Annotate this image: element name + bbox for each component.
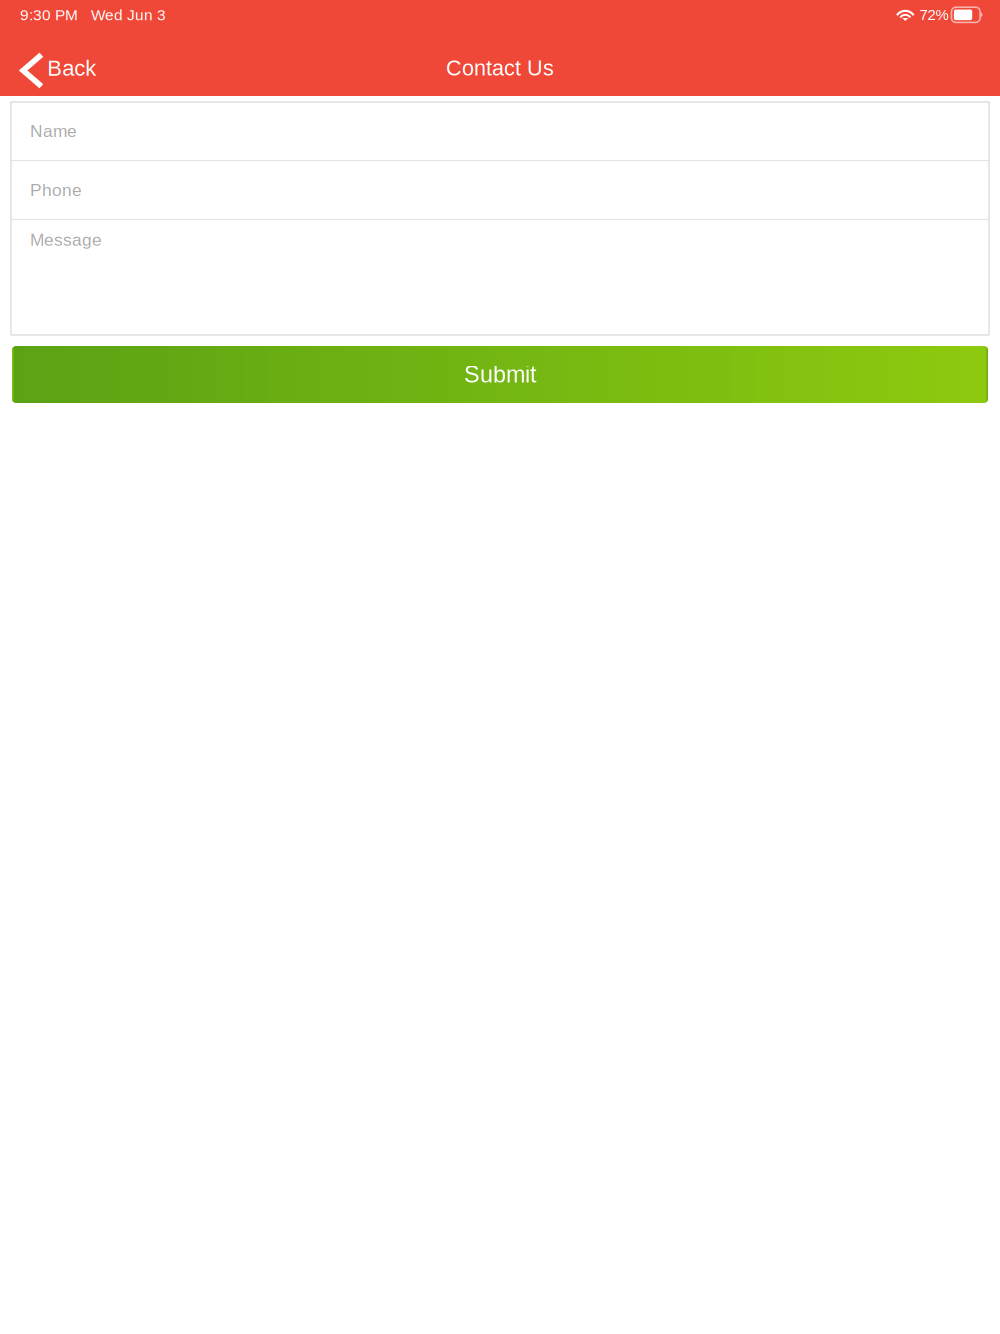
staticText: Contact Us xyxy=(446,56,554,80)
staticText: Name xyxy=(30,121,77,141)
button[interactable]: Phone xyxy=(11,161,989,219)
button[interactable]: Message xyxy=(11,220,989,335)
staticText: 72% xyxy=(919,6,948,23)
button[interactable]: Submit xyxy=(12,346,988,403)
staticText: Phone xyxy=(30,180,82,200)
staticText: Message xyxy=(30,230,102,249)
button[interactable]: Name xyxy=(11,102,989,160)
staticText: 9:30 PM xyxy=(20,6,78,23)
staticText: Back xyxy=(47,56,96,80)
staticText: Submit xyxy=(464,361,536,388)
staticText: Wed Jun 3 xyxy=(91,6,166,23)
button[interactable]: Back xyxy=(0,40,110,96)
